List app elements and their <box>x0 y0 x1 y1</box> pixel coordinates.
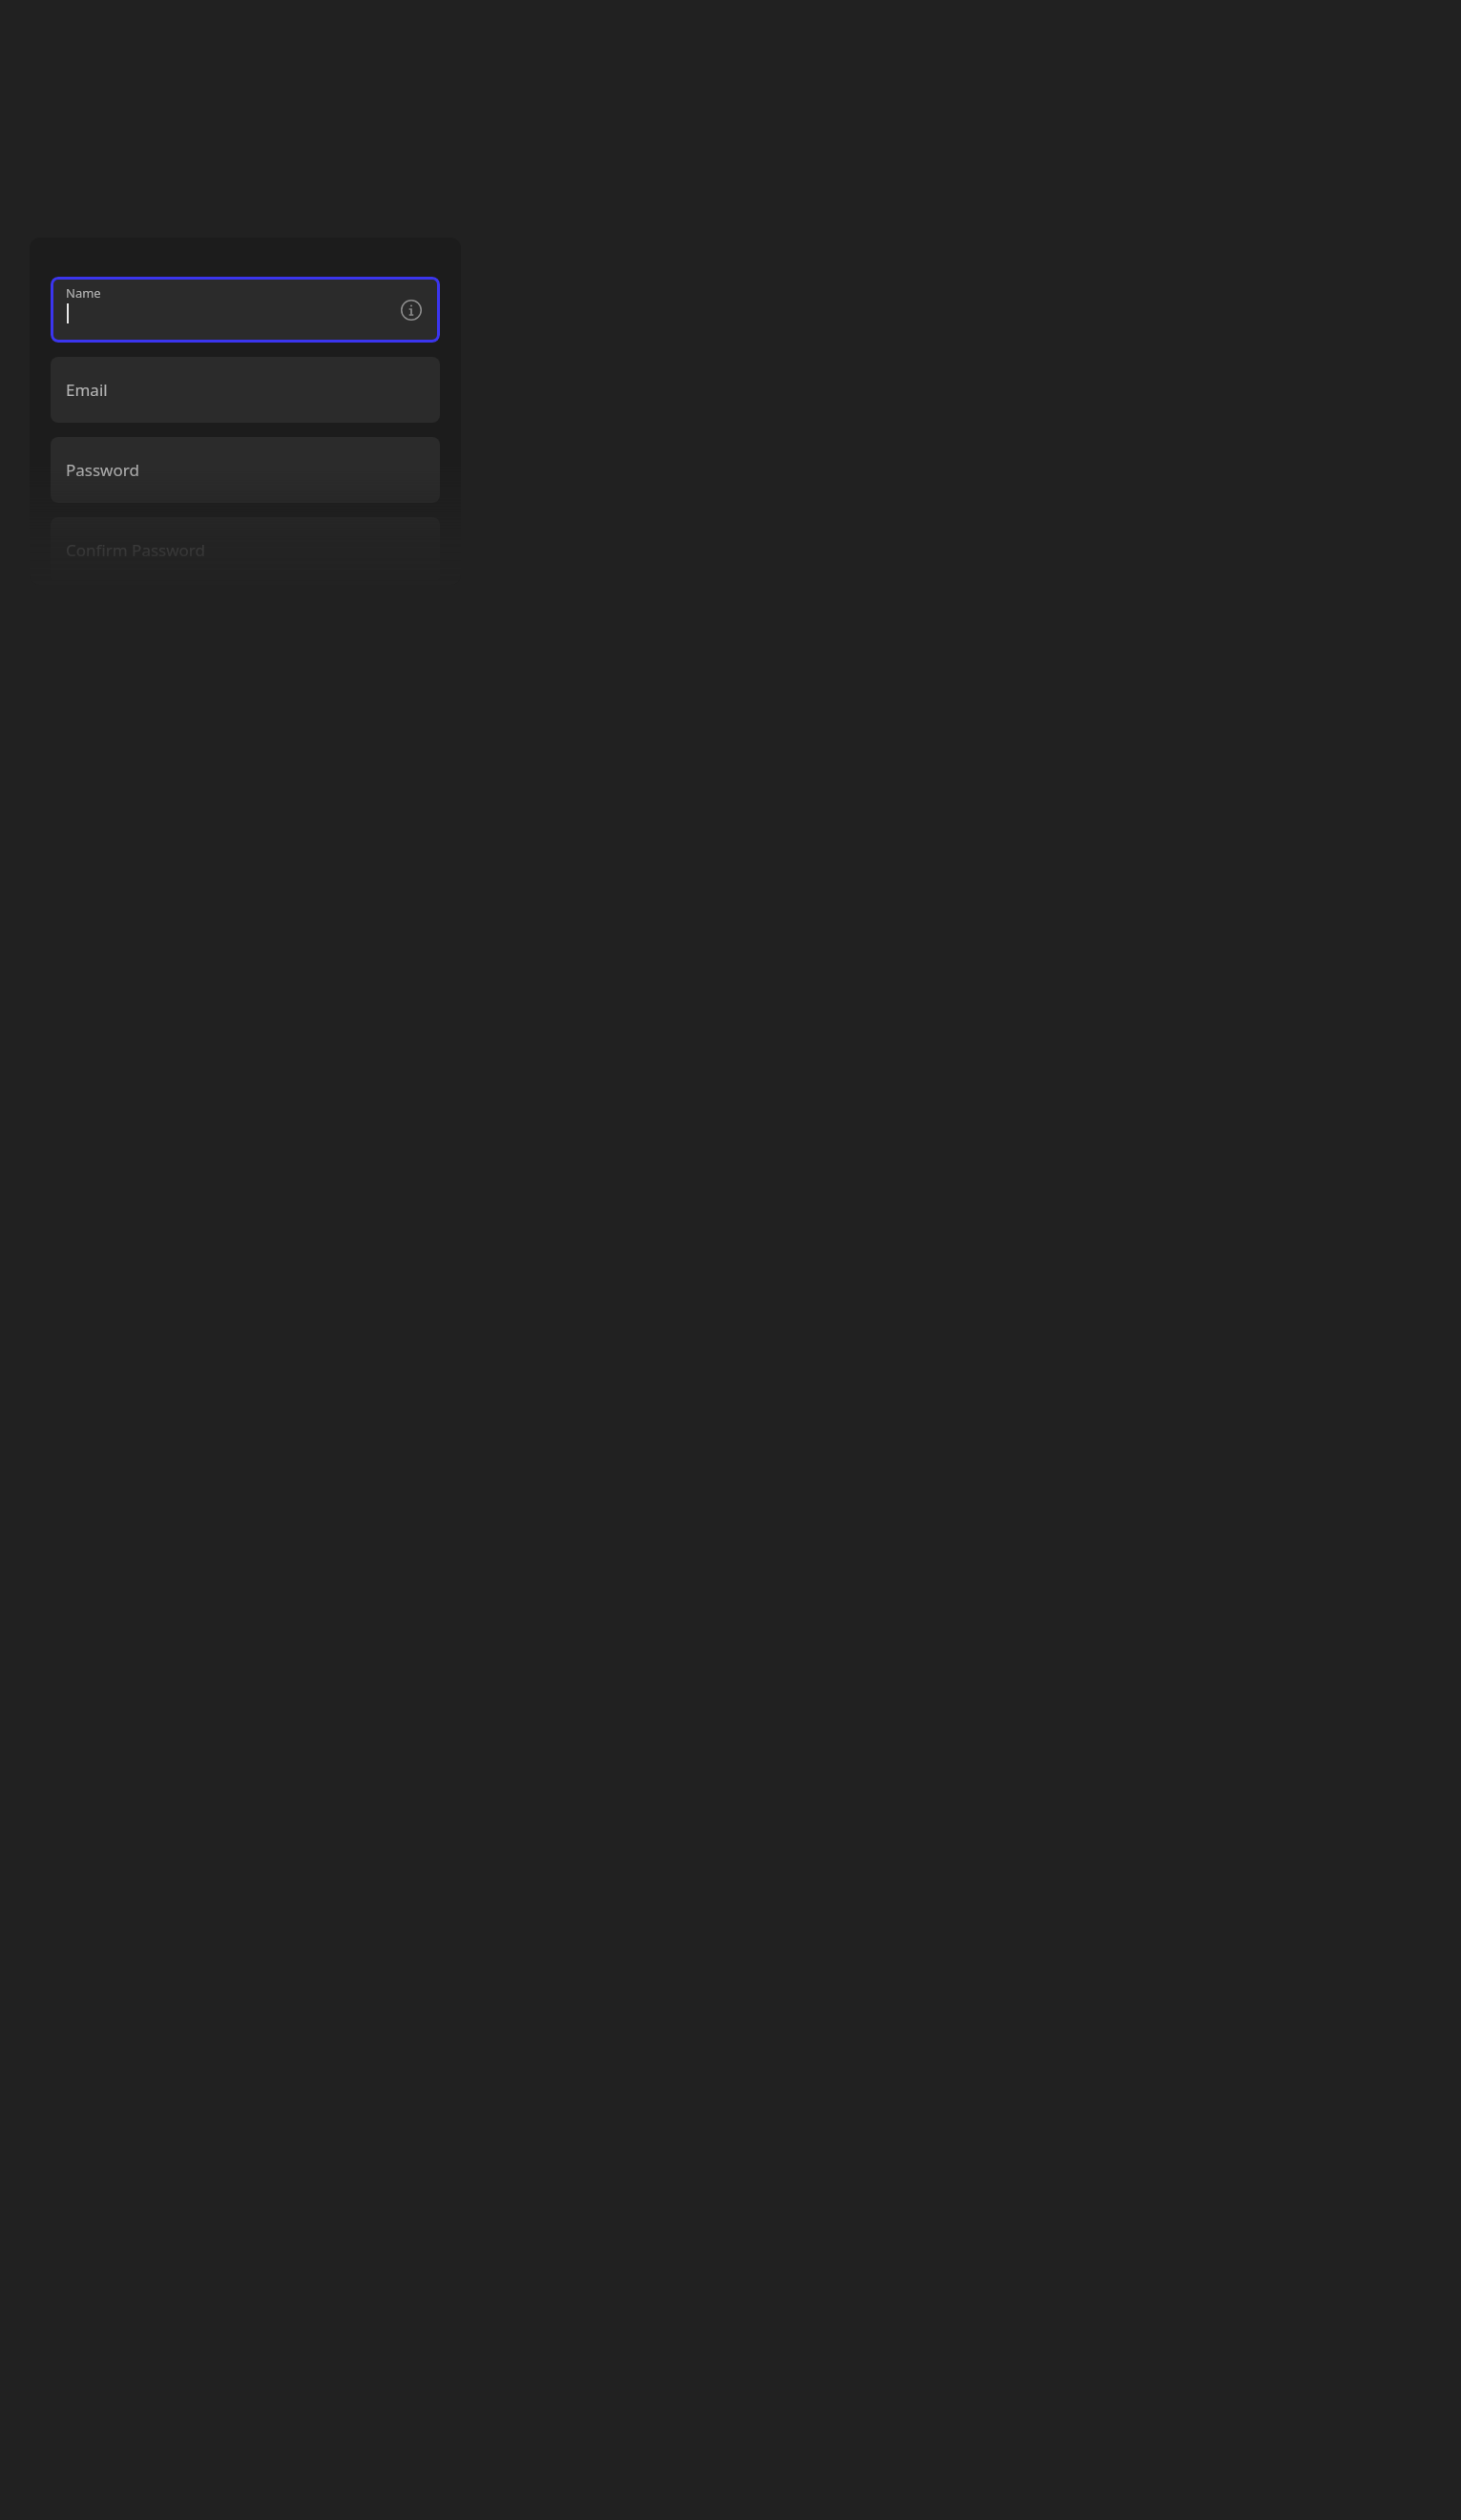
staticText: Confirm Password <box>66 539 205 561</box>
button[interactable]: Name <box>51 277 440 343</box>
button[interactable]: Email <box>51 357 440 423</box>
staticText: Name <box>66 284 101 302</box>
button[interactable]: More information about Name <box>400 299 423 322</box>
staticText: Email <box>66 379 108 401</box>
staticText: Password <box>66 459 139 481</box>
button[interactable]: Password <box>51 437 440 503</box>
